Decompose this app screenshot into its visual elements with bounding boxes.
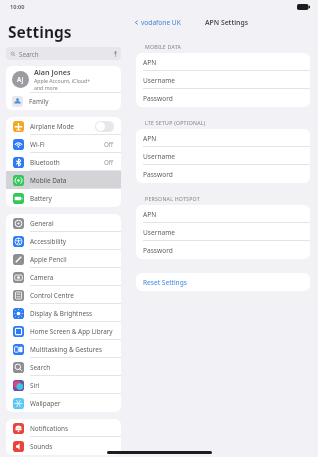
other: Accessibility (13, 236, 24, 247)
other: Search (13, 362, 24, 373)
other: Control Centre (13, 290, 24, 301)
other: Wallpaper (13, 398, 24, 409)
staticText: Password (143, 170, 173, 179)
button[interactable]: Search (6, 47, 121, 60)
button[interactable]: Multitasking & Gestures (6, 340, 121, 358)
button[interactable]: Control Centre (6, 286, 121, 304)
button[interactable]: Camera (6, 268, 121, 286)
staticText: Home Screen & App Library (30, 327, 114, 336)
staticText: Battery (30, 194, 114, 203)
staticText: LTE SETUP (OPTIONAL) (145, 119, 206, 126)
staticText: vodafone UK (141, 18, 181, 27)
staticText: Control Centre (30, 291, 114, 300)
button[interactable]: Sounds (6, 437, 121, 455)
other: Display & Brightness (13, 308, 24, 319)
staticText: and more (34, 84, 58, 91)
other: Siri (13, 380, 24, 391)
staticText: APN (143, 134, 157, 143)
staticText: Mobile Data (30, 176, 114, 185)
staticText: Search (19, 50, 114, 58)
button[interactable]: Airplane Mode toggle (95, 121, 114, 132)
button[interactable]: APN (136, 129, 310, 147)
other: Home Screen & App Library (13, 326, 24, 337)
staticText: Password (143, 94, 173, 103)
other: Bluetooth (13, 157, 24, 168)
button[interactable]: Username (136, 147, 310, 165)
staticText: MOBILE DATA (145, 43, 182, 50)
staticText: Off (104, 158, 114, 166)
button[interactable]: APN (136, 205, 310, 223)
button[interactable]: Search (6, 358, 121, 376)
other: Wi-Fi (13, 139, 24, 150)
staticText: Multitasking & Gestures (30, 345, 114, 354)
button[interactable]: Apple Pencil (6, 250, 121, 268)
staticText: Family (29, 97, 49, 106)
staticText: Notifications (30, 424, 114, 433)
staticText: APN Settings (205, 18, 249, 27)
staticText: Alan Jones (34, 67, 71, 77)
button[interactable]: Notifications (6, 419, 121, 437)
staticText: Reset Settings (143, 278, 187, 287)
staticText: APN (143, 210, 157, 219)
staticText: Settings (8, 21, 72, 42)
other: General (13, 218, 24, 229)
button[interactable]: Username (136, 223, 310, 241)
button[interactable]: Home Screen & App Library (6, 322, 121, 340)
button[interactable]: Airplane Mode (6, 117, 121, 135)
button[interactable]: Password (136, 165, 310, 183)
staticText: 10:00 (10, 3, 25, 11)
staticText: Apple Pencil (30, 255, 114, 264)
staticText: Apple Account, iCloud+ (34, 77, 91, 84)
other: Notifications (13, 423, 24, 434)
other: Mobile Data (13, 175, 24, 186)
other: Camera (13, 272, 24, 283)
button[interactable]: Display & Brightness (6, 304, 121, 322)
staticText: PERSONAL HOTSPOT (145, 195, 200, 202)
staticText: APN (143, 58, 157, 67)
staticText: Bluetooth (30, 158, 104, 167)
button[interactable]: Reset Settings (136, 273, 310, 291)
staticText: Off (104, 140, 114, 148)
other: Battery (13, 193, 24, 204)
other: Apple Pencil (13, 254, 24, 265)
staticText: Airplane Mode (30, 122, 95, 131)
staticText: Siri (30, 381, 114, 390)
staticText: Password (143, 246, 173, 255)
staticText: Display & Brightness (30, 309, 114, 318)
button[interactable]: General (6, 214, 121, 232)
button[interactable]: Password (136, 241, 310, 259)
button[interactable]: Siri (6, 376, 121, 394)
staticText: Wi-Fi (30, 140, 104, 149)
staticText: AJ (17, 75, 24, 84)
staticText: General (30, 219, 114, 228)
staticText: Camera (30, 273, 114, 282)
other: Sounds (13, 441, 24, 452)
staticText: Accessibility (30, 237, 114, 246)
button[interactable]: AJ (12, 66, 115, 92)
other: Airplane Mode (13, 121, 24, 132)
staticText: Username (143, 152, 176, 161)
staticText: Username (143, 76, 176, 85)
other: Multitasking & Gestures (13, 344, 24, 355)
button[interactable]: Password (136, 89, 310, 107)
button[interactable]: Username (136, 71, 310, 89)
button[interactable]: Battery (6, 189, 121, 207)
button[interactable]: vodafone UK (132, 18, 183, 27)
button[interactable]: APN (136, 53, 310, 71)
staticText: Search (30, 363, 114, 372)
button[interactable]: Wallpaper (6, 394, 121, 412)
staticText: Wallpaper (30, 399, 114, 408)
button[interactable]: Mobile Data (6, 171, 121, 189)
button[interactable]: Accessibility (6, 232, 121, 250)
button[interactable]: Family (12, 93, 115, 110)
button[interactable]: Wi-Fi (6, 135, 121, 153)
button[interactable]: Bluetooth (6, 153, 121, 171)
staticText: Username (143, 228, 176, 237)
staticText: Sounds (30, 442, 114, 451)
